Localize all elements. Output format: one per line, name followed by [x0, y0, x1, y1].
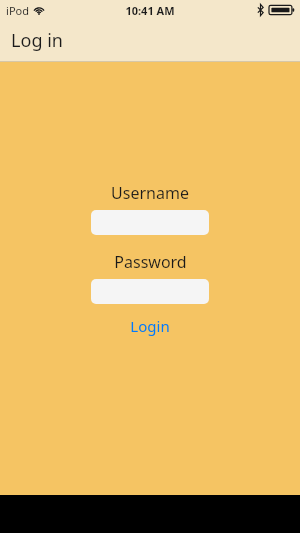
staticText: Password [114, 251, 187, 273]
button[interactable]: Username input field [91, 210, 209, 235]
staticText: Log in [11, 28, 63, 53]
staticText: Login [130, 316, 170, 336]
staticText: Username [111, 182, 189, 204]
button[interactable]: Password input field [91, 279, 209, 304]
staticText: iPod [6, 3, 29, 18]
staticText: 10:41 AM [125, 3, 175, 18]
button[interactable]: Login [120, 314, 180, 338]
